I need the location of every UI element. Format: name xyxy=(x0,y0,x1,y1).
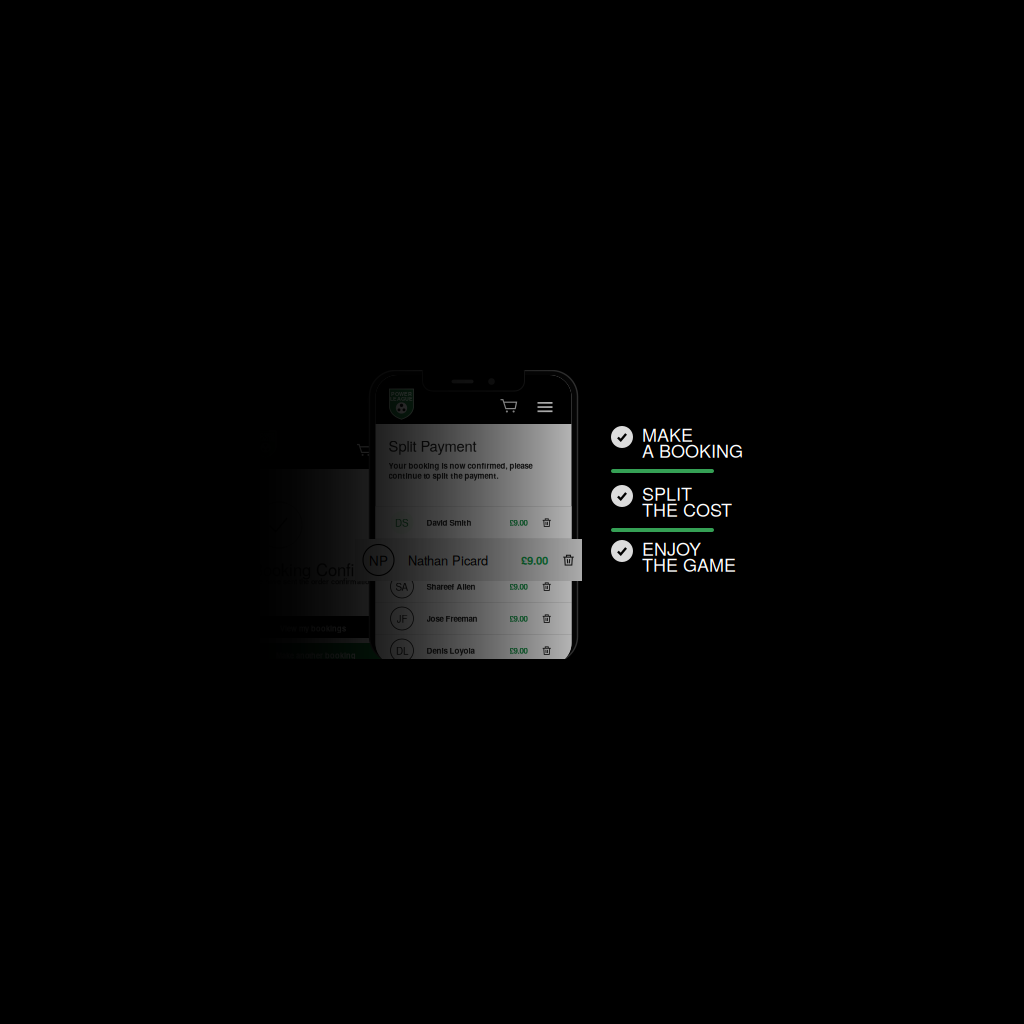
staticText: DS xyxy=(395,515,409,529)
staticText: Jose Freeman xyxy=(426,613,477,624)
staticText: continue to split the payment. xyxy=(388,470,498,481)
button[interactable]: SPLIT xyxy=(611,484,751,516)
button[interactable]: DL xyxy=(375,635,571,666)
staticText: ENJOY xyxy=(642,535,701,561)
button[interactable]: ENJOY xyxy=(611,539,751,571)
staticText: Your booking is now confirmed, please xyxy=(388,460,532,471)
staticText: THE GAME xyxy=(642,551,736,577)
staticText: SPLIT xyxy=(642,480,692,506)
staticText: DL xyxy=(396,643,408,657)
staticText: David Smith xyxy=(426,517,471,528)
staticText: LEAGUE xyxy=(390,395,413,402)
staticText: A BOOKING xyxy=(642,437,743,463)
staticText: Make another booking xyxy=(276,650,356,661)
staticText: THE COST xyxy=(642,496,732,522)
button[interactable]: SA xyxy=(375,571,571,602)
staticText: £9.00 xyxy=(509,517,527,528)
staticText: Split Payment xyxy=(388,435,476,456)
button[interactable]: NP xyxy=(375,539,571,570)
staticText: £9.00 xyxy=(509,613,527,624)
staticText: We have sent the order confirmation. xyxy=(252,576,375,586)
staticText: POWER xyxy=(391,390,412,398)
staticText: £9.00 xyxy=(509,549,527,560)
button[interactable]: NP xyxy=(355,539,582,581)
staticText: NP xyxy=(369,550,388,570)
button[interactable]: JF xyxy=(375,603,571,634)
button[interactable]: DS xyxy=(375,507,571,538)
staticText: View my bookings xyxy=(280,623,346,634)
button[interactable]: Menu xyxy=(537,402,552,412)
staticText: Nathan Picard xyxy=(408,551,488,569)
staticText: SA xyxy=(395,579,408,593)
button[interactable]: Cart xyxy=(500,399,516,412)
button[interactable]: MAKE xyxy=(611,425,751,457)
staticText: £9.00 xyxy=(521,552,548,568)
staticText: MAKE xyxy=(642,421,693,447)
staticText: Denis Loyola xyxy=(426,645,474,656)
staticText: Nathan Picard xyxy=(426,549,478,560)
staticText: Shareef Allen xyxy=(426,581,475,592)
staticText: JF xyxy=(396,611,407,625)
staticText: £9.00 xyxy=(509,581,527,592)
staticText: £9.00 xyxy=(509,645,527,656)
staticText: Booking Confirmed xyxy=(252,557,392,581)
